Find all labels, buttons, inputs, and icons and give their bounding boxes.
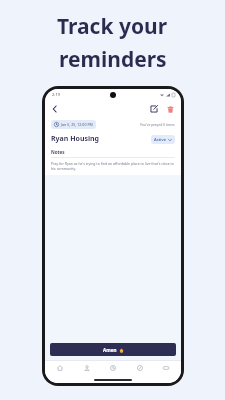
button[interactable]: Delete — [164, 103, 176, 115]
button[interactable]: Jan 6, 25, 12:00 PM — [51, 120, 96, 129]
staticText: reminders — [59, 45, 167, 74]
staticText: Jan 6, 25, 12:00 PM — [61, 122, 93, 127]
button[interactable]: Menu — [157, 360, 175, 376]
staticText: Ryan Housing — [51, 134, 100, 144]
button[interactable]: People — [78, 360, 96, 376]
staticText: You've prayed 0 times — [140, 122, 175, 127]
staticText: Track your — [57, 12, 168, 41]
button[interactable]: Explore — [131, 360, 149, 376]
staticText: 2:19 — [52, 92, 60, 97]
button[interactable]: History — [104, 360, 122, 376]
staticText: Notes — [51, 149, 65, 155]
button[interactable]: Home — [51, 360, 69, 376]
button[interactable]: Amen — [50, 343, 176, 356]
staticText: Active — [154, 137, 166, 142]
staticText: Amen — [103, 347, 117, 353]
button[interactable]: Active — [151, 135, 175, 144]
button[interactable]: Edit — [148, 103, 160, 115]
staticText: Pray for Ryan as he's trying to find an … — [51, 161, 175, 171]
button[interactable]: Back — [49, 103, 61, 115]
